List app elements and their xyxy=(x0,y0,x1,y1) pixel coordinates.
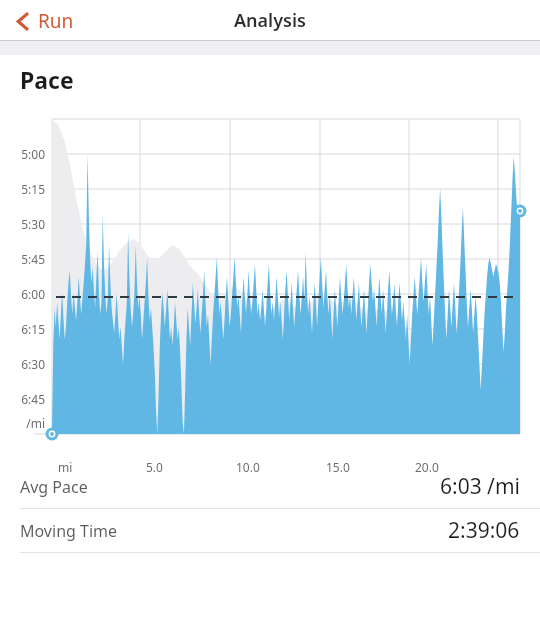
staticText: 5:45 xyxy=(0,251,45,267)
staticText: Analysis xyxy=(234,8,306,33)
staticText: Run xyxy=(38,8,74,34)
staticText: mi xyxy=(58,459,73,475)
button[interactable]: Avg Pace xyxy=(0,465,540,508)
staticText: 10.0 xyxy=(236,459,260,475)
staticText: 5:15 xyxy=(0,181,45,197)
staticText: 2:39:06 xyxy=(448,516,520,545)
button[interactable]: Back xyxy=(0,4,86,38)
staticText: 6:15 xyxy=(0,321,45,337)
staticText: 6:45 xyxy=(0,391,45,407)
staticText: 5:30 xyxy=(0,216,45,232)
other: Back xyxy=(16,11,31,32)
staticText: 6:03 /mi xyxy=(440,472,520,501)
staticText: Moving Time xyxy=(20,520,118,542)
staticText: 5.0 xyxy=(146,459,163,475)
staticText: /mi xyxy=(0,415,45,431)
staticText: 5:00 xyxy=(0,146,45,162)
button[interactable]: Moving Time xyxy=(0,509,540,552)
staticText: Pace xyxy=(20,64,74,95)
staticText: 6:30 xyxy=(0,356,45,372)
staticText: 20.0 xyxy=(415,459,439,475)
staticText: Avg Pace xyxy=(20,476,88,498)
staticText: 6:00 xyxy=(0,286,45,302)
staticText: 15.0 xyxy=(326,459,350,475)
